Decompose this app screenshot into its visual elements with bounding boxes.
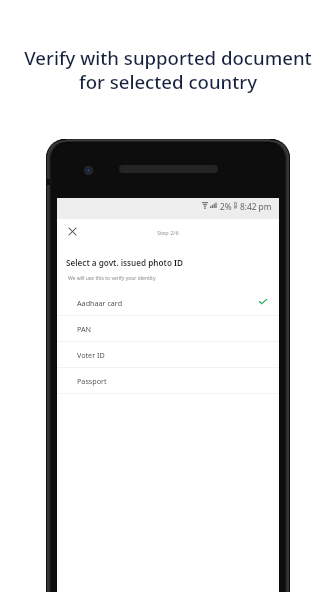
staticText: Select a govt. issued photo ID [66,257,183,268]
staticText: Step 2/6 [157,229,179,237]
button[interactable]: Close [64,223,81,240]
button[interactable]: PAN [57,316,279,342]
staticText: 8:42 pm [240,201,272,212]
staticText: We will use this to verify your identity [68,275,156,282]
staticText: Verify with supported document for selec… [24,45,312,95]
staticText: PAN [77,324,92,334]
staticText: Aadhaar card [77,298,123,308]
staticText: Voter ID [77,350,105,360]
button[interactable]: Aadhaar card [57,290,279,316]
button[interactable]: Passport [57,368,279,394]
button[interactable]: Voter ID [57,342,279,368]
staticText: Passport [77,376,107,386]
staticText: 2% [220,201,232,212]
